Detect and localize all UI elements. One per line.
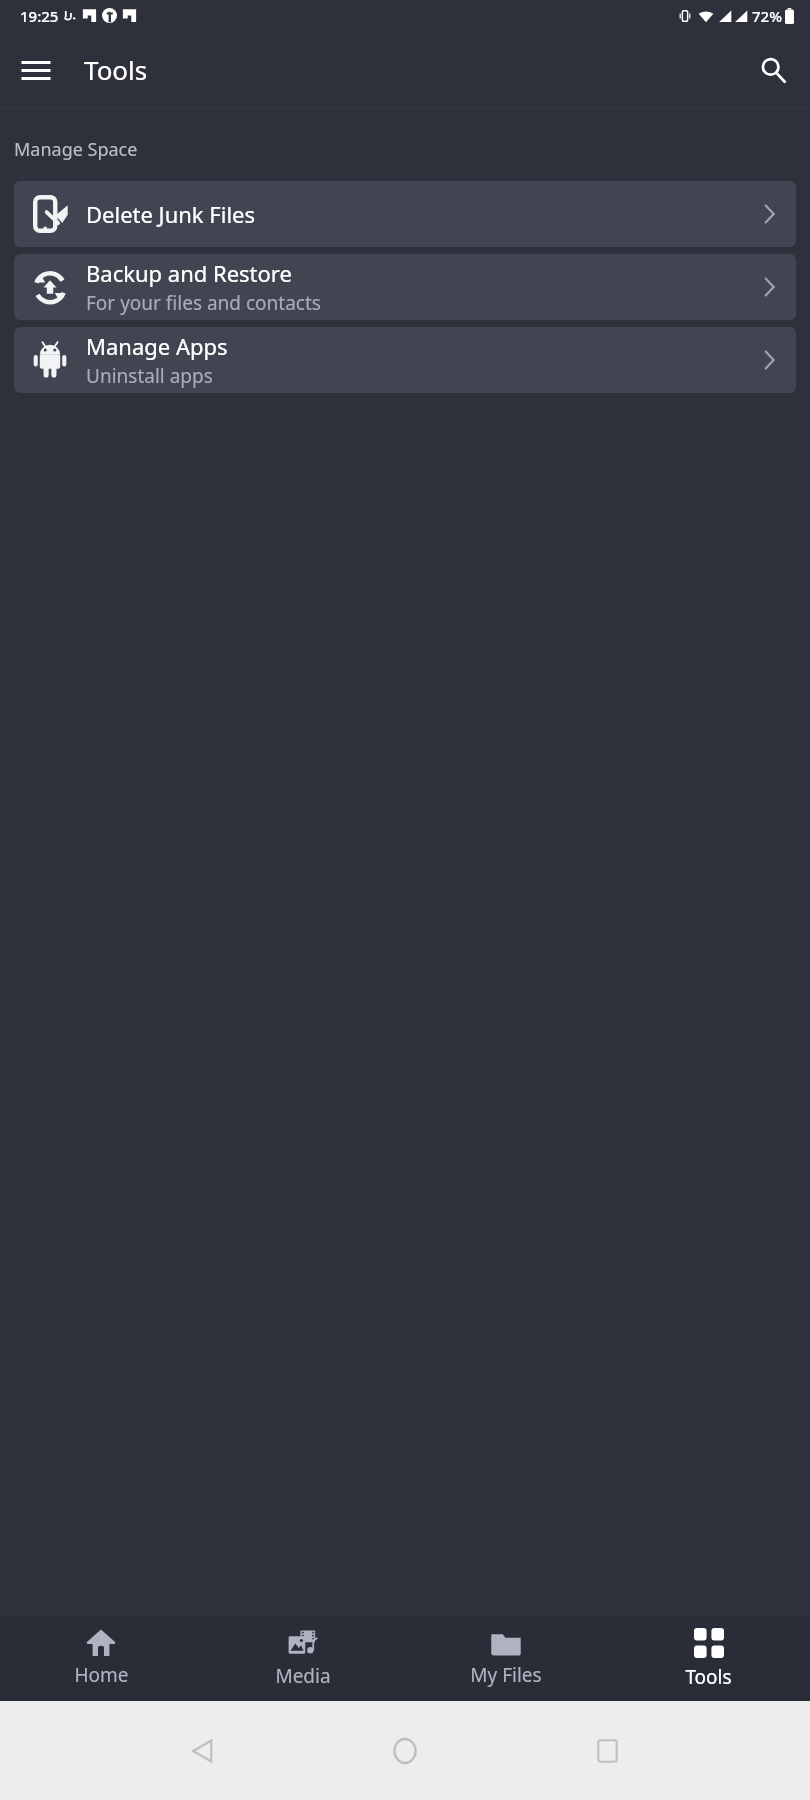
button[interactable]: Open navigation menu [10,44,62,96]
staticText: Tools [84,52,148,87]
button[interactable]: Search [746,43,800,97]
staticText: Delete Junk Files [86,199,256,229]
button[interactable]: Delete Junk Files [14,181,796,247]
button[interactable]: Backup and Restore [14,254,796,320]
button[interactable]: My Files [404,1616,607,1701]
button[interactable]: Manage Apps [14,327,796,393]
button[interactable]: Recent apps [506,1701,709,1800]
button[interactable]: Back [100,1701,303,1800]
button[interactable]: Media [202,1616,404,1701]
staticText: Backup and Restore [86,258,292,288]
staticText: Manage Apps [86,331,228,361]
staticText: For your files and contacts [86,290,321,316]
staticText: Tools [685,1664,732,1690]
staticText: Home [74,1662,129,1688]
button[interactable]: Home [303,1701,506,1800]
staticText: My Files [470,1662,542,1688]
button[interactable]: Home [0,1616,202,1701]
staticText: Manage Space [14,137,138,162]
staticText: Media [275,1663,331,1689]
staticText: 72% [752,6,782,26]
staticText: Uninstall apps [86,363,213,389]
button[interactable]: Tools [607,1616,810,1701]
staticText: 19:25 [20,6,59,26]
